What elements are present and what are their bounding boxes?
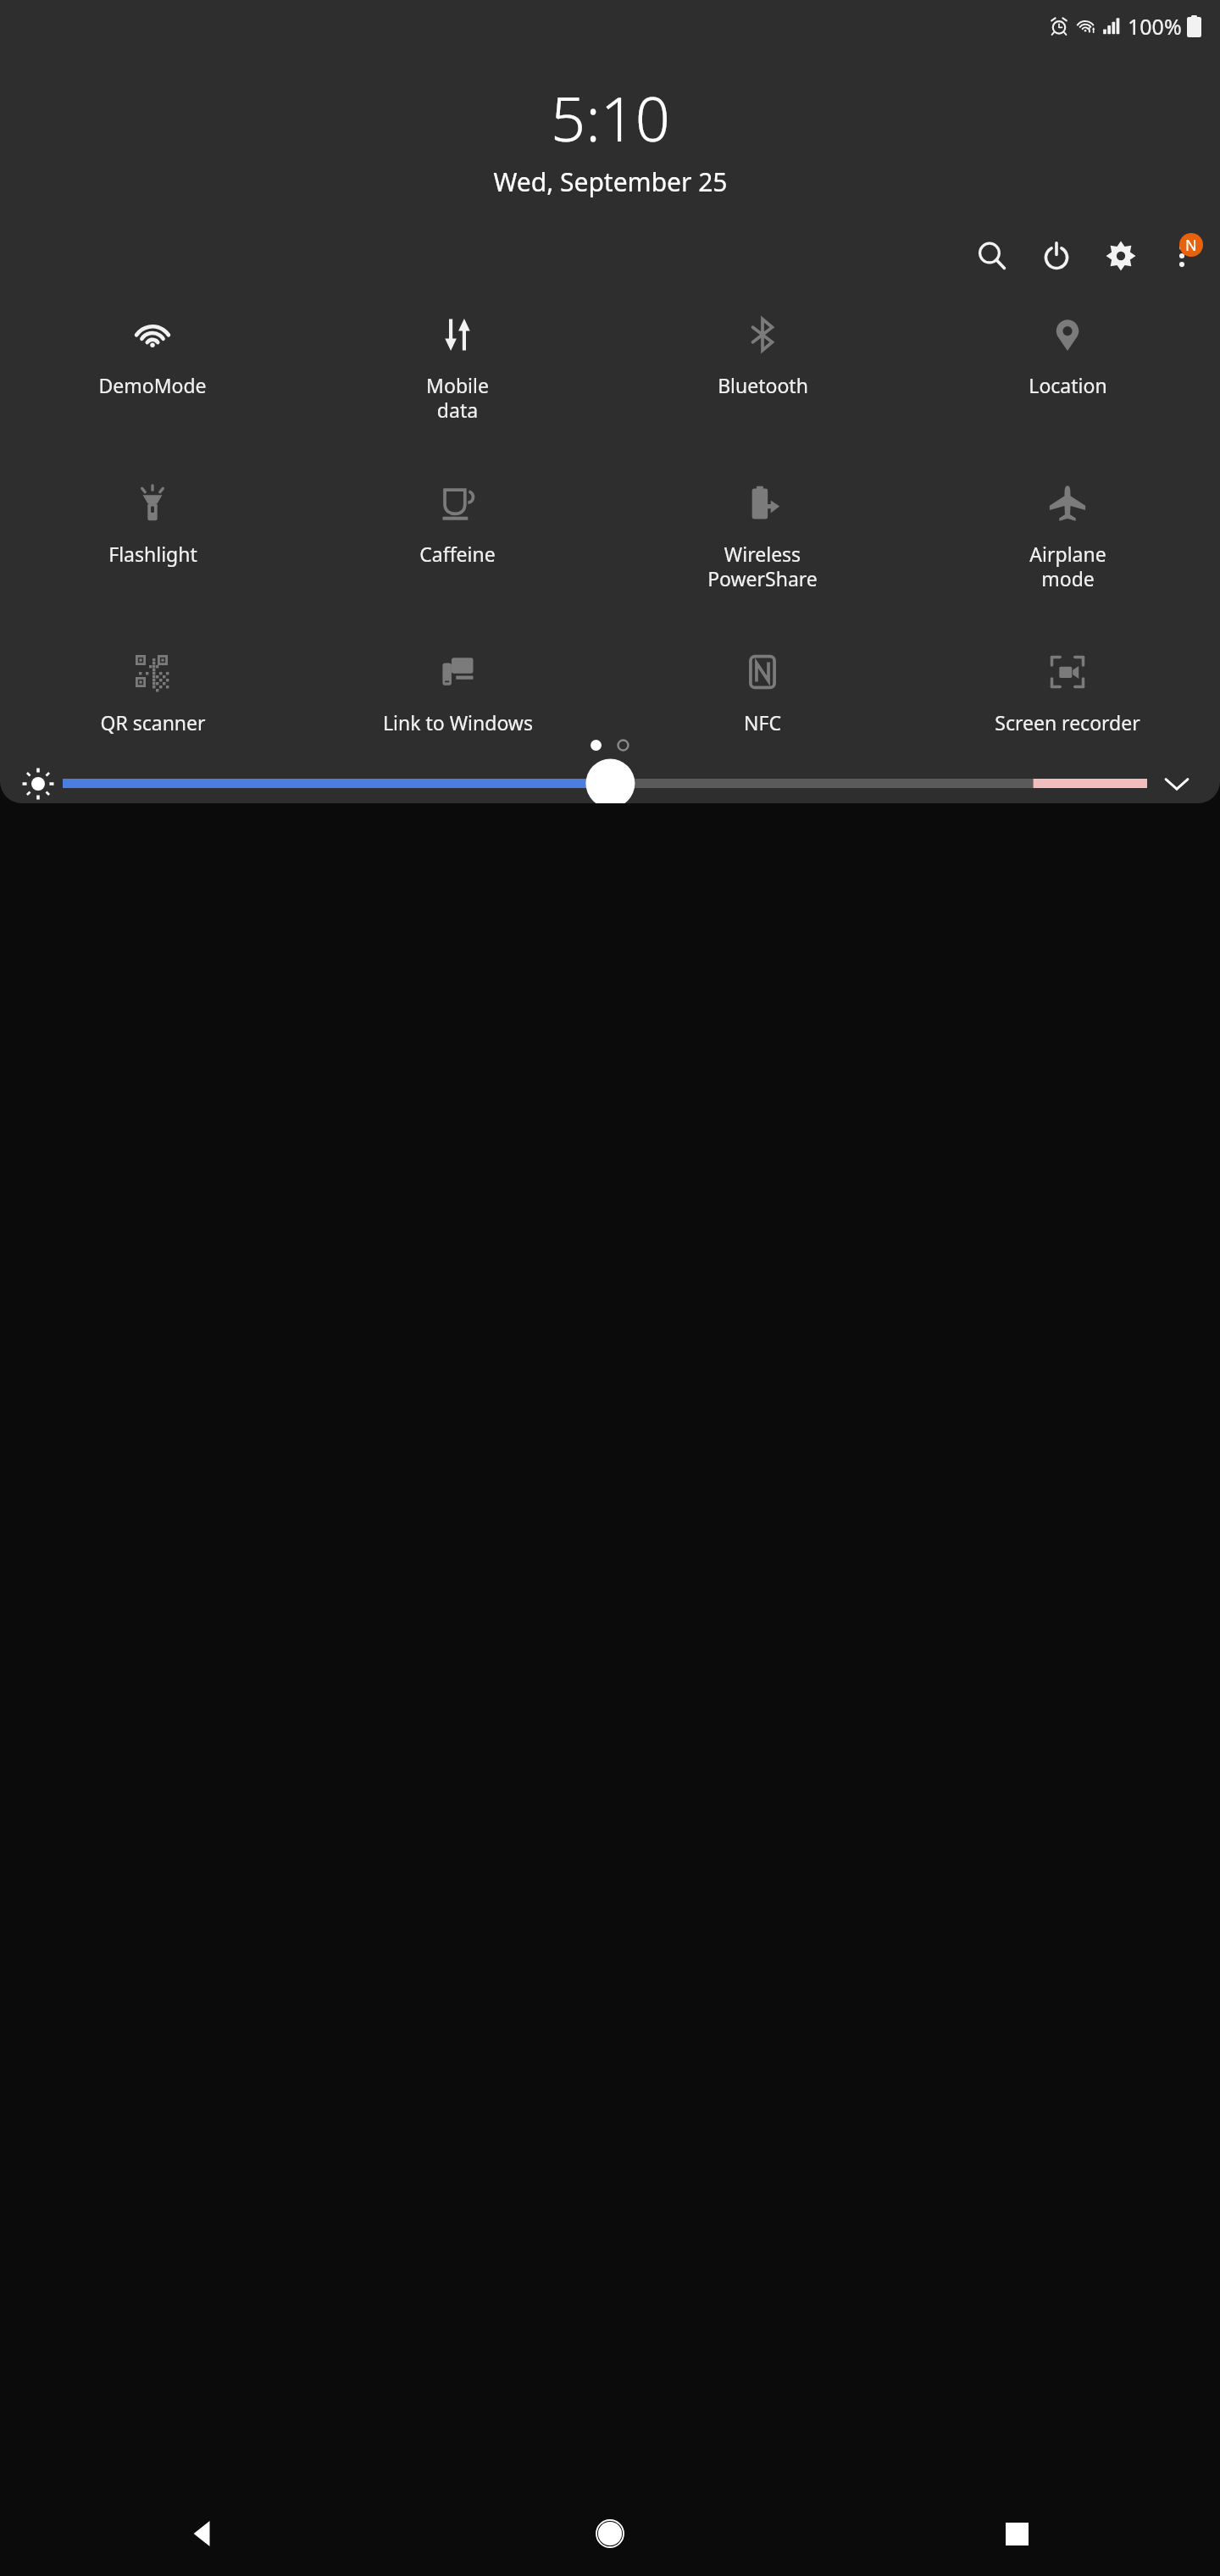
button[interactable]: More options bbox=[1156, 230, 1208, 282]
staticText: Flashlight bbox=[108, 541, 197, 567]
staticText: Link to Windows bbox=[383, 709, 533, 736]
staticText: Airplane mode bbox=[1029, 541, 1106, 592]
staticText: QR scanner bbox=[100, 709, 206, 736]
button[interactable]: Back bbox=[165, 2495, 241, 2572]
button[interactable]: Mobile data bbox=[305, 308, 610, 427]
staticText: Screen recorder bbox=[995, 709, 1140, 736]
staticText: Wireless PowerShare bbox=[707, 541, 818, 592]
button[interactable]: Bluetooth bbox=[610, 308, 915, 402]
staticText: 100% bbox=[1128, 12, 1182, 41]
button[interactable]: Wireless PowerShare bbox=[610, 476, 915, 596]
staticText: Bluetooth bbox=[718, 372, 808, 398]
button[interactable]: Settings bbox=[1095, 230, 1147, 282]
button[interactable]: Recent apps bbox=[979, 2495, 1055, 2572]
button[interactable]: Location bbox=[915, 308, 1220, 402]
button[interactable]: Link to Windows bbox=[305, 645, 610, 739]
button[interactable]: Brightness slider bbox=[63, 763, 1147, 803]
button[interactable]: Flashlight bbox=[0, 476, 305, 570]
staticText: DemoMode bbox=[98, 372, 207, 398]
button[interactable]: Search bbox=[966, 230, 1018, 282]
button[interactable]: Airplane mode bbox=[915, 476, 1220, 596]
staticText: Caffeine bbox=[419, 541, 496, 567]
staticText: Mobile data bbox=[426, 372, 489, 424]
staticText: NFC bbox=[744, 709, 781, 736]
button[interactable]: Screen recorder bbox=[915, 645, 1220, 739]
button[interactable]: Home bbox=[572, 2495, 648, 2572]
button[interactable]: NFC bbox=[610, 645, 915, 739]
staticText: Wed, September 25 bbox=[493, 164, 728, 199]
staticText: 5:10 bbox=[551, 76, 670, 159]
button[interactable]: Expand brightness settings bbox=[1147, 763, 1206, 803]
button[interactable]: Power bbox=[1030, 230, 1083, 282]
button[interactable]: DemoMode bbox=[0, 308, 305, 402]
button[interactable]: QR scanner bbox=[0, 645, 305, 739]
button[interactable]: Caffeine bbox=[305, 476, 610, 570]
staticText: N bbox=[1185, 235, 1197, 256]
staticText: Location bbox=[1029, 372, 1107, 398]
button[interactable]: Brightness bbox=[14, 763, 63, 803]
